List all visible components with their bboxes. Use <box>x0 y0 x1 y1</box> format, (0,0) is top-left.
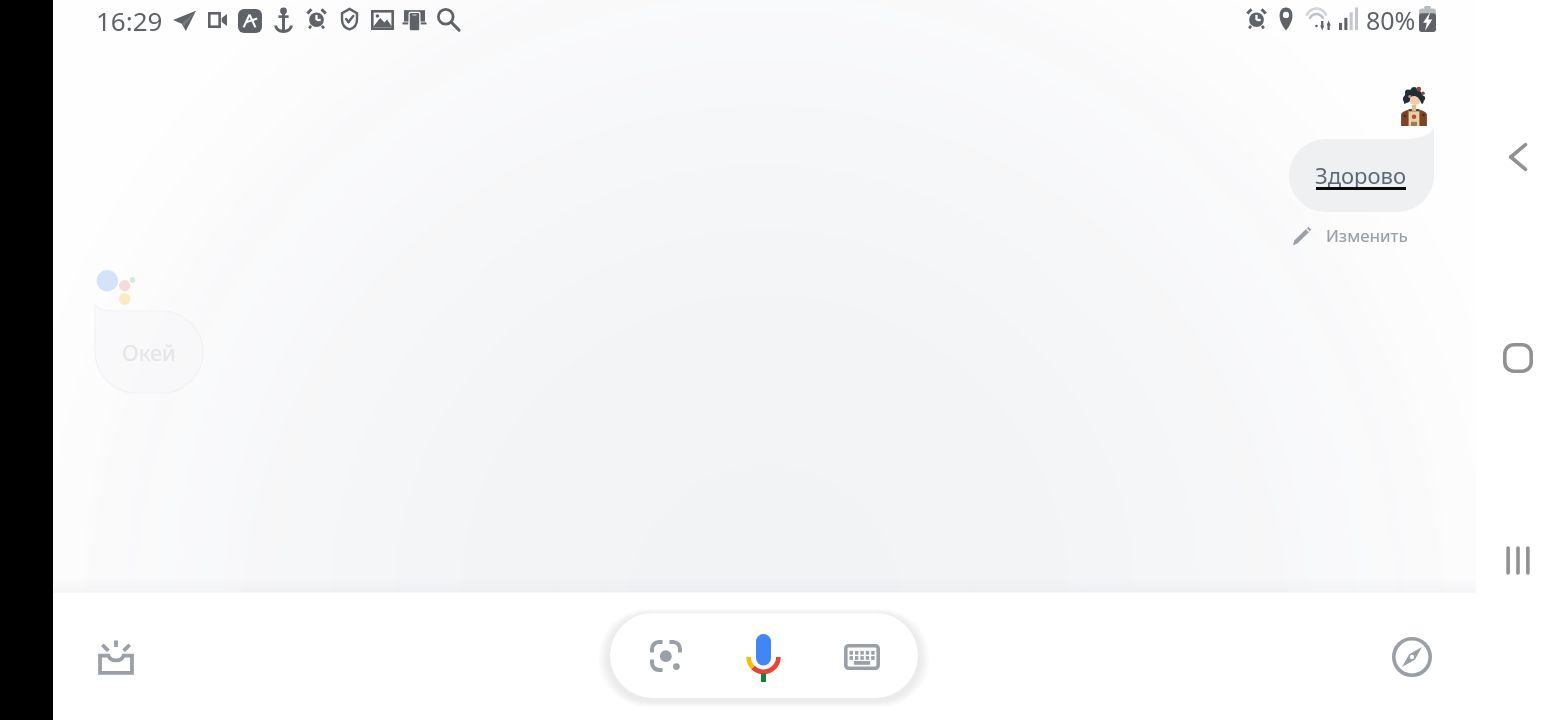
button[interactable]: Google Lens <box>638 628 694 684</box>
button[interactable]: Recent apps <box>1490 532 1546 588</box>
staticText: Здорово <box>1315 160 1407 190</box>
button[interactable]: Окей <box>95 304 203 393</box>
button[interactable]: Voice search <box>737 628 790 686</box>
button[interactable]: Home <box>1490 330 1546 386</box>
staticText: Окей <box>122 337 176 367</box>
staticText: Изменить <box>1326 224 1408 247</box>
staticText: 80% <box>1366 3 1416 37</box>
button[interactable]: Snapshot <box>84 625 148 689</box>
button[interactable]: Изменить <box>1292 221 1408 249</box>
staticText: 16:29 <box>96 3 163 38</box>
button[interactable]: Keyboard <box>834 629 890 685</box>
button[interactable]: Back <box>1490 129 1546 185</box>
button[interactable]: Explore <box>1380 625 1444 689</box>
button[interactable]: Здорово <box>1289 126 1434 212</box>
